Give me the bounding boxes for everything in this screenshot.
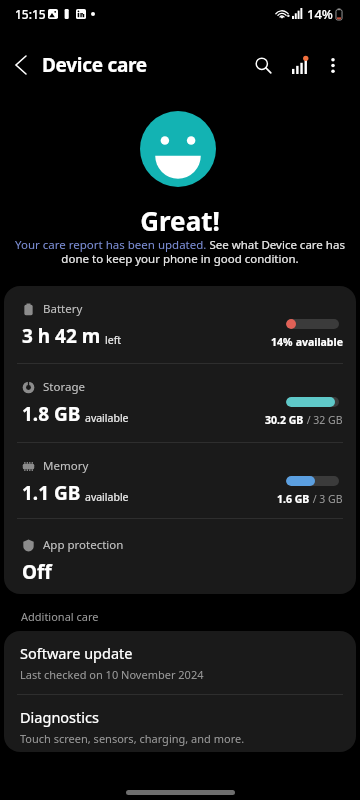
staticText: Great! [0, 203, 360, 238]
staticText: Off [22, 559, 52, 585]
staticText: Memory [43, 458, 89, 474]
staticText: Software update [20, 643, 133, 663]
staticText: Additional care [21, 609, 99, 624]
staticText: / 32 GB [304, 413, 343, 427]
staticText: Storage [43, 379, 85, 395]
button[interactable]: Memory [4, 443, 356, 518]
staticText: Device care [42, 52, 147, 78]
staticText: Diagnostics [20, 707, 99, 727]
staticText: Touch screen, sensors, charging, and mor… [20, 731, 245, 746]
button[interactable]: Navigate up [0, 40, 42, 90]
button[interactable]: Search [245, 40, 282, 90]
staticText: 14% [307, 5, 333, 23]
staticText: 14% [271, 335, 293, 349]
button[interactable]: Software update [4, 631, 356, 694]
staticText: App protection [43, 537, 124, 553]
staticText: left [105, 333, 122, 347]
button[interactable]: Battery [4, 286, 356, 363]
button[interactable]: More options [318, 40, 348, 90]
staticText: 1.8 GB [22, 401, 81, 427]
button[interactable]: Diagnostics [4, 695, 356, 752]
staticText: 30.2 GB [265, 413, 304, 427]
staticText: Battery [43, 301, 83, 317]
staticText: available [293, 335, 343, 349]
button[interactable]: App protection [4, 519, 356, 594]
staticText: available [85, 490, 129, 504]
staticText: 1.1 GB [22, 480, 81, 506]
staticText: 15:15 [15, 6, 46, 22]
button[interactable]: Usage chart [282, 40, 318, 90]
staticText: Last checked on 10 November 2024 [20, 667, 204, 682]
staticText: / 3 GB [310, 492, 343, 506]
staticText: 1.6 GB [277, 492, 310, 506]
button[interactable]: Storage [4, 364, 356, 442]
staticText: 3 h 42 m [22, 323, 101, 349]
staticText: Your care report has been updated. See w… [9, 237, 351, 267]
staticText: available [85, 411, 129, 425]
